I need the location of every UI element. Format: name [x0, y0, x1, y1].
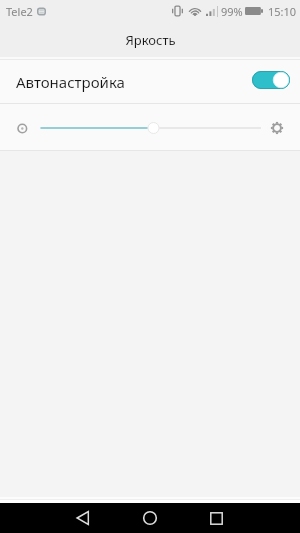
- button[interactable]: Back: [63, 503, 103, 533]
- button[interactable]: Dim: [0, 104, 34, 151]
- staticText: Автонастройка: [16, 72, 125, 92]
- button[interactable]: Recents: [196, 503, 236, 533]
- staticText: 15:10: [268, 4, 297, 19]
- staticText: Tele2: [6, 4, 33, 19]
- button[interactable]: [252, 71, 290, 89]
- button[interactable]: Home: [130, 503, 170, 533]
- button[interactable]: Автонастройка: [0, 57, 300, 104]
- button[interactable]: Brighten: [264, 104, 300, 151]
- staticText: 99%: [221, 4, 243, 19]
- staticText: Яркость: [125, 31, 176, 49]
